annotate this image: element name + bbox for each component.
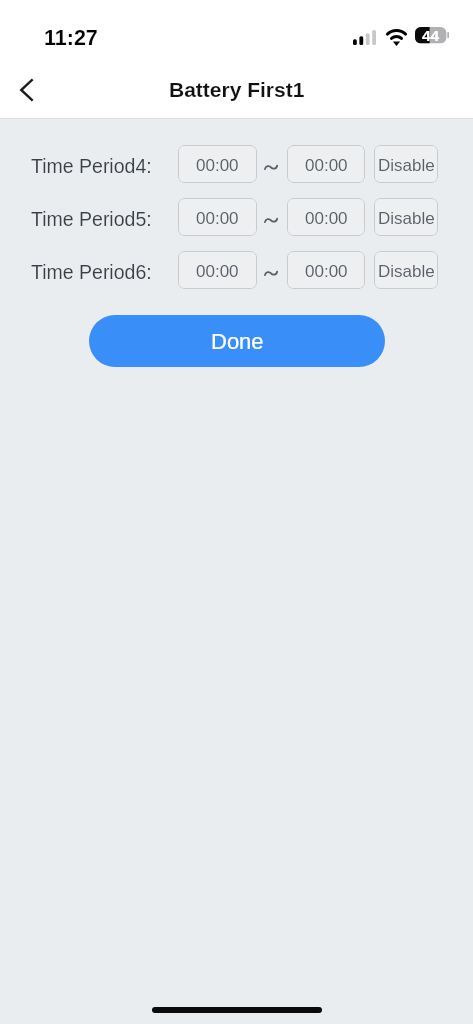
staticText: 44 — [422, 27, 440, 44]
button[interactable]: Back — [2, 66, 50, 114]
staticText: Time Period4: — [31, 155, 152, 177]
staticText: 00:00 — [196, 156, 239, 175]
button[interactable]: 00:00 — [178, 198, 257, 236]
button[interactable]: Disable — [374, 198, 438, 236]
staticText: 11:27 — [44, 26, 98, 50]
staticText: 00:00 — [305, 209, 348, 228]
staticText: Time Period6: — [31, 261, 152, 283]
button[interactable]: 00:00 — [287, 145, 365, 183]
button[interactable]: Disable — [374, 251, 438, 289]
button[interactable]: 00:00 — [287, 198, 365, 236]
button[interactable]: Disable — [374, 145, 438, 183]
button[interactable]: Done — [89, 315, 385, 367]
staticText: Time Period5: — [31, 208, 152, 230]
staticText: 00:00 — [305, 156, 348, 175]
staticText: 00:00 — [196, 262, 239, 281]
button[interactable]: 00:00 — [287, 251, 365, 289]
staticText: 00:00 — [305, 262, 348, 281]
staticText: Battery First1 — [169, 78, 305, 101]
button[interactable]: 00:00 — [178, 251, 257, 289]
staticText: Done — [211, 329, 264, 354]
staticText: Disable — [378, 262, 435, 281]
staticText: Disable — [378, 209, 435, 228]
staticText: 00:00 — [196, 209, 239, 228]
button[interactable]: 00:00 — [178, 145, 257, 183]
staticText: Disable — [378, 156, 435, 175]
